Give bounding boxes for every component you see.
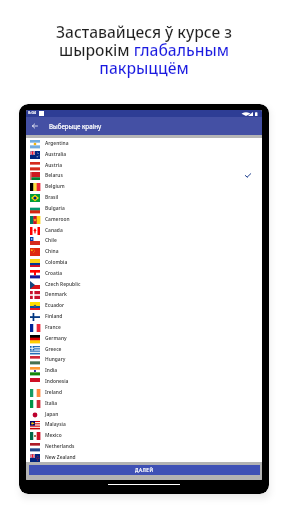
staticText: 8:04: [28, 110, 36, 115]
staticText: Finland: [45, 313, 63, 320]
button[interactable]: Croatia: [26, 268, 262, 279]
button[interactable]: Malaysia: [26, 419, 262, 430]
button[interactable]: Australia: [26, 149, 262, 160]
button[interactable]: Ecuador: [26, 300, 262, 311]
button[interactable]: New Zealand: [26, 452, 262, 463]
button[interactable]: Italia: [26, 398, 262, 409]
staticText: Ecuador: [45, 302, 65, 309]
staticText: Belarus: [45, 172, 63, 179]
staticText: Argentina: [45, 140, 69, 147]
button[interactable]: Brasil: [26, 192, 262, 203]
staticText: Bulgaria: [45, 205, 65, 212]
staticText: Colombia: [45, 259, 68, 266]
staticText: Germany: [45, 335, 67, 342]
staticText: Netherlands: [45, 443, 75, 450]
button[interactable]: China: [26, 246, 262, 257]
button[interactable]: Ireland: [26, 387, 262, 398]
button[interactable]: Hungary: [26, 354, 262, 365]
staticText: Indonesia: [45, 378, 69, 385]
button[interactable]: India: [26, 365, 262, 376]
button[interactable]: Bulgaria: [26, 203, 262, 214]
button[interactable]: Austria: [26, 160, 262, 171]
button[interactable]: France: [26, 322, 262, 333]
staticText: Australia: [45, 151, 67, 158]
staticText: Выберыце краіну: [49, 122, 102, 130]
staticText: Denmark: [45, 291, 67, 298]
staticText: Belgium: [45, 183, 65, 190]
button[interactable]: Denmark: [26, 289, 262, 300]
staticText: Ireland: [45, 389, 62, 396]
staticText: Canada: [45, 227, 63, 234]
staticText: Hungary: [45, 356, 66, 363]
staticText: Заставайцеся ў курсе з шырокім глабальны…: [51, 21, 237, 79]
staticText: India: [45, 367, 58, 374]
staticText: Japan: [45, 411, 59, 418]
button[interactable]: Mexico: [26, 430, 262, 441]
staticText: New Zealand: [45, 454, 76, 461]
button[interactable]: Back: [26, 117, 44, 135]
staticText: Chile: [45, 237, 57, 244]
staticText: Czech Republic: [45, 281, 81, 288]
button[interactable]: Czech Republic: [26, 279, 262, 290]
button[interactable]: Indonesia: [26, 376, 262, 387]
button[interactable]: Netherlands: [26, 441, 262, 452]
button[interactable]: Colombia: [26, 257, 262, 268]
button[interactable]: Cameroon: [26, 214, 262, 225]
staticText: Greece: [45, 346, 62, 353]
button[interactable]: Canada: [26, 225, 262, 236]
button[interactable]: Belarus: [26, 170, 262, 181]
staticText: Brasil: [45, 194, 59, 201]
button[interactable]: Finland: [26, 311, 262, 322]
button[interactable]: ДАЛЕЙ: [29, 465, 260, 475]
button[interactable]: Chile: [26, 235, 262, 246]
staticText: France: [45, 324, 61, 331]
staticText: Austria: [45, 162, 63, 169]
button[interactable]: Argentina: [26, 138, 262, 149]
staticText: Malaysia: [45, 421, 66, 428]
staticText: Mexico: [45, 432, 62, 439]
button[interactable]: Japan: [26, 409, 262, 420]
button[interactable]: Greece: [26, 344, 262, 355]
staticText: Italia: [45, 400, 58, 407]
button[interactable]: Germany: [26, 333, 262, 344]
staticText: Cameroon: [45, 216, 70, 223]
staticText: China: [45, 248, 59, 255]
button[interactable]: Belgium: [26, 181, 262, 192]
staticText: ДАЛЕЙ: [135, 467, 154, 473]
staticText: Croatia: [45, 270, 63, 277]
